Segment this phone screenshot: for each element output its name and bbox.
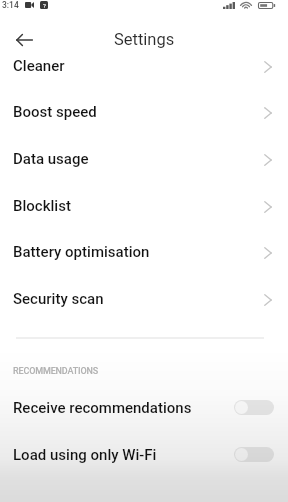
staticText: Data usage: [13, 150, 89, 168]
staticText: Cleaner: [13, 59, 65, 75]
button[interactable]: Security scan: [0, 275, 288, 322]
staticText: RECOMMENDATIONS: [13, 366, 99, 377]
staticText: Boost speed: [13, 103, 97, 121]
staticText: Blocklist: [13, 197, 71, 215]
staticText: Load using only Wi-Fi: [13, 446, 157, 464]
staticText: Security scan: [13, 290, 104, 308]
staticText: Receive recommendations: [13, 399, 192, 417]
staticText: Battery optimisation: [13, 243, 150, 261]
button[interactable]: Load using only Wi-Fi: [0, 431, 288, 478]
button[interactable]: Back: [8, 24, 40, 56]
button[interactable]: Cleaner: [0, 59, 288, 89]
button[interactable]: Data usage: [0, 135, 288, 182]
staticText: 3:14: [2, 0, 19, 10]
button[interactable]: Boost speed: [0, 88, 288, 135]
button[interactable]: Blocklist: [0, 182, 288, 229]
button[interactable]: Receive recommendations: [0, 384, 288, 431]
button[interactable]: Battery optimisation: [0, 228, 288, 275]
staticText: Settings: [114, 30, 175, 49]
staticText: ?: [43, 2, 46, 9]
